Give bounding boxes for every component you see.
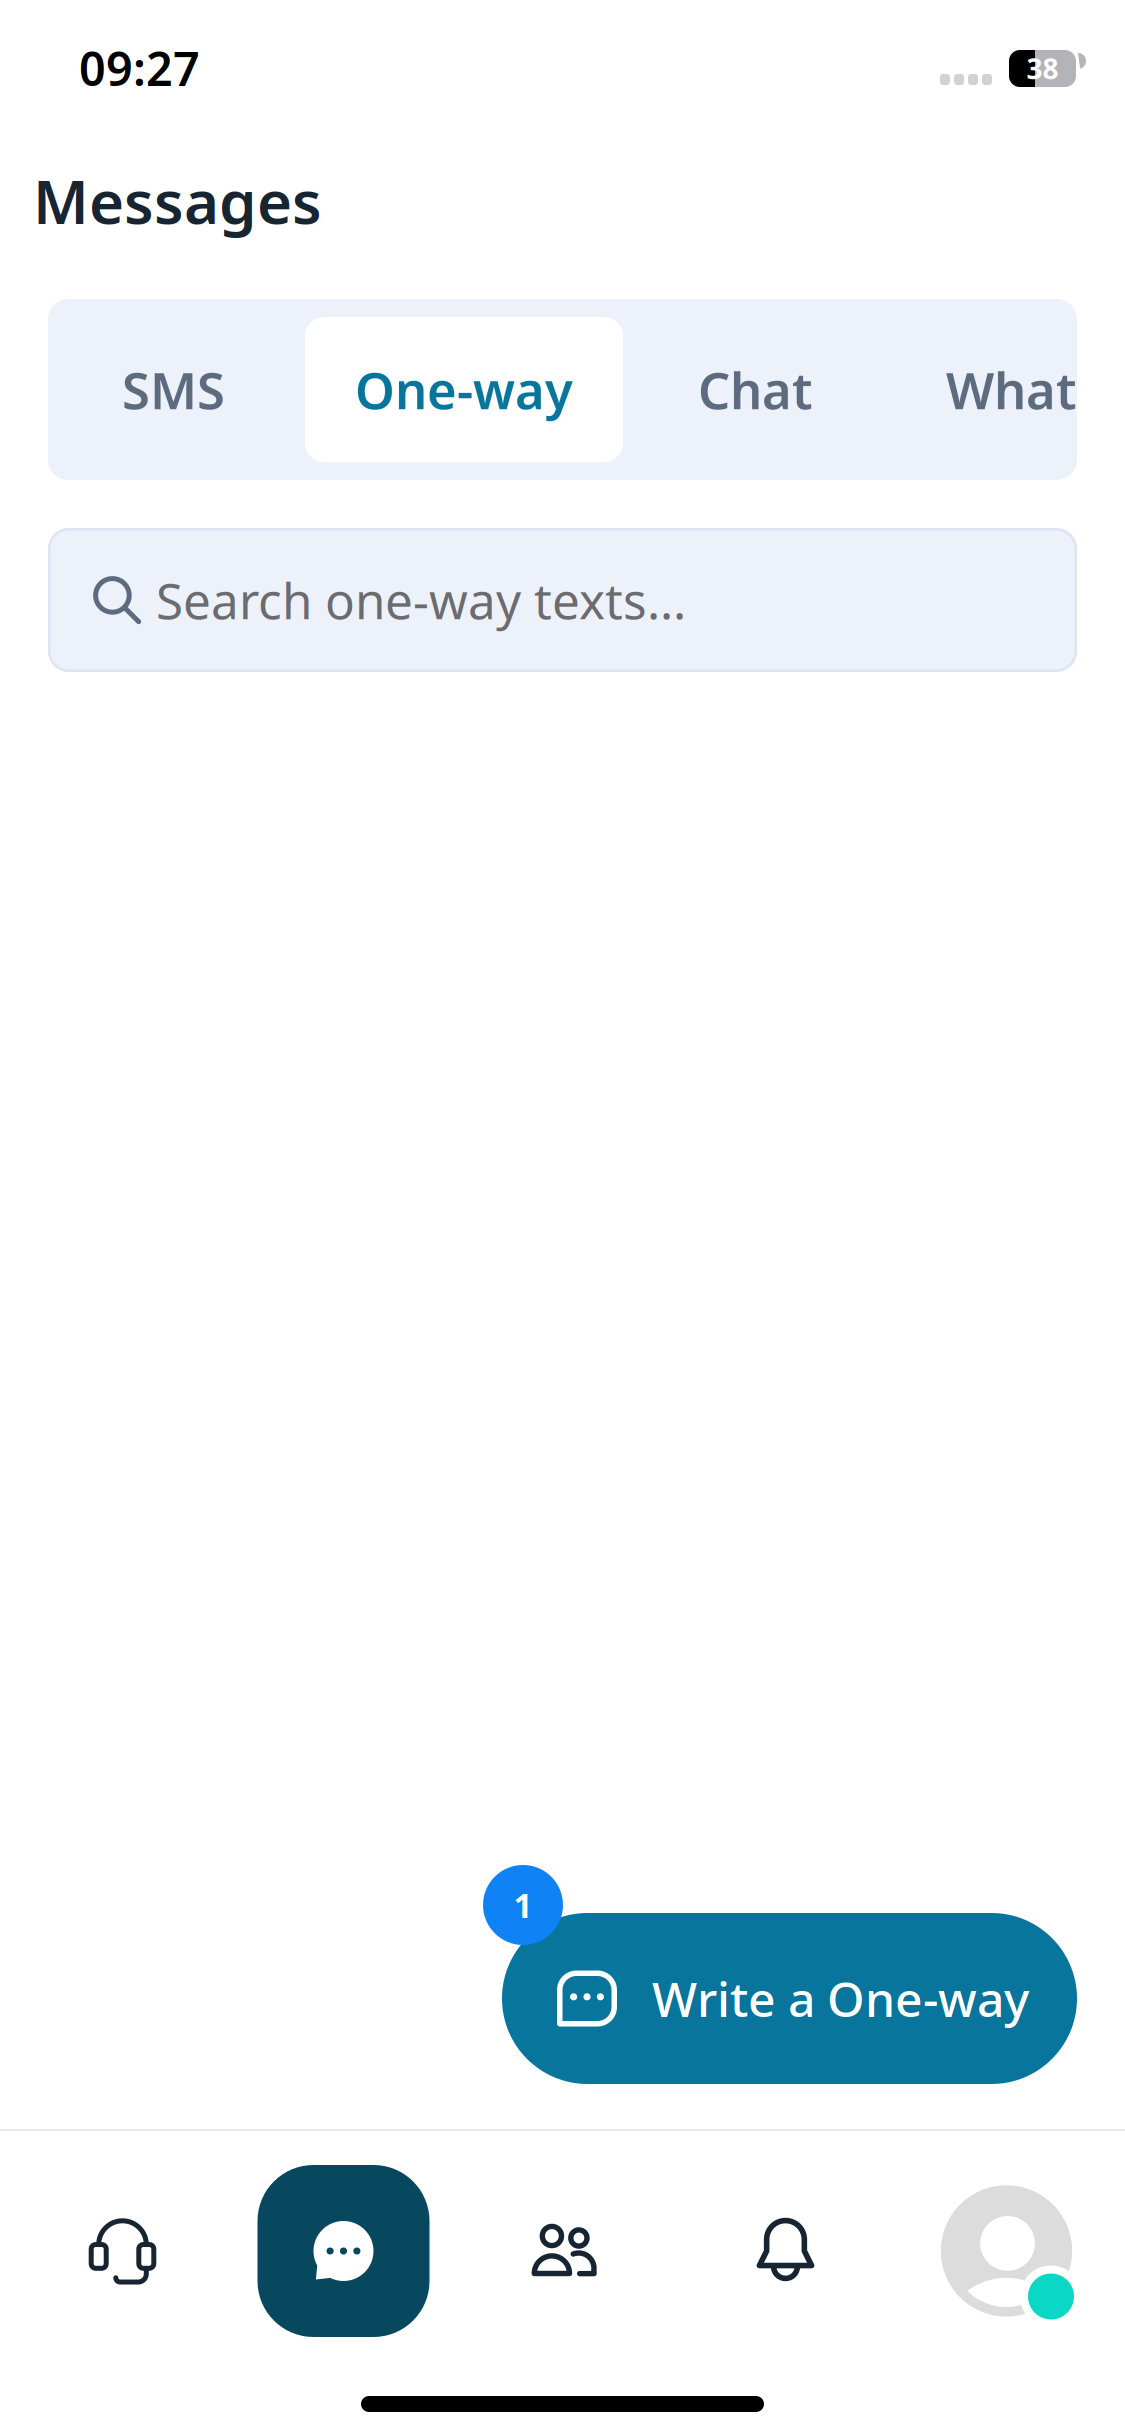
staticText: 1 [513,1883,532,1927]
staticText: WhatsApp [946,356,1125,423]
staticText: 38 [1026,50,1058,87]
staticText: Search one-way texts... [156,567,686,633]
button[interactable]: Notifications [675,2131,896,2371]
button[interactable]: One-way [305,299,623,480]
staticText: SMS [122,356,225,423]
button[interactable]: Contacts [454,2131,675,2371]
staticText: One-way [355,356,573,423]
button[interactable]: Profile [896,2131,1117,2371]
button[interactable]: Support [12,2131,233,2371]
staticText: Chat [698,356,813,423]
staticText: Write a One-way [652,1967,1029,2030]
button[interactable]: Messages [233,2131,454,2371]
button[interactable]: Search one-way texts... [48,528,1077,672]
button[interactable]: WhatsApp [888,299,1125,480]
button[interactable]: Write a One-way [502,1913,1077,2084]
staticText: Messages [33,161,322,241]
staticText: 09:27 [79,37,200,99]
button[interactable]: SMS [48,299,305,480]
button[interactable]: Chat [623,299,888,480]
